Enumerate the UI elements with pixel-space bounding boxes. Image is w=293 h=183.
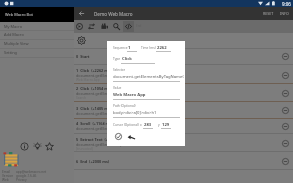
button[interactable]: Info xyxy=(20,142,29,151)
button[interactable]: Back xyxy=(76,8,87,19)
button[interactable]: Remove step xyxy=(281,122,290,131)
button[interactable]: Code xyxy=(123,21,134,32)
staticText: 129 xyxy=(162,122,170,128)
staticText: Selector xyxy=(113,68,126,72)
staticText: body>div>a[0]>div>h1 xyxy=(113,110,157,116)
staticText: y xyxy=(158,123,160,127)
button[interactable]: Play xyxy=(73,20,85,33)
staticText: 9:06 xyxy=(282,1,291,7)
staticText: Demo Web Macro xyxy=(94,11,133,17)
staticText: document.getElementsByTagName( xyxy=(76,91,141,96)
staticText: Value xyxy=(113,86,122,90)
button[interactable]: Rate app xyxy=(45,142,54,151)
button[interactable]: Remove step xyxy=(281,139,290,148)
button[interactable]: Record video xyxy=(98,20,110,33)
button[interactable]: RESET xyxy=(260,8,277,19)
button[interactable]: 2 Click (+1054 ms) xyxy=(74,84,293,102)
button[interactable]: Remove step xyxy=(281,106,290,115)
staticText: app@webmacro.net xyxy=(16,170,47,174)
button[interactable]: My Macro xyxy=(0,22,74,31)
staticText: 1 Click (+2262 ms) xyxy=(76,68,112,73)
button[interactable]: Undo xyxy=(125,131,136,142)
button[interactable]: Search xyxy=(110,20,122,33)
button[interactable]: Repeat xyxy=(85,20,97,33)
staticText: document.getElementsByTagName( xyxy=(76,126,141,131)
button[interactable]: Settings xyxy=(76,35,87,46)
button[interactable]: Add Macro xyxy=(0,30,74,39)
staticText: document.getElementsByTagName( xyxy=(76,73,141,78)
staticText: Web Macro Bot xyxy=(5,12,33,17)
staticText: document.getElementsByClassNa xyxy=(76,111,137,116)
button[interactable]: INFO xyxy=(277,8,293,19)
button[interactable]: Remove step xyxy=(281,71,290,80)
staticText: Cursor (Optional) xyxy=(113,123,139,127)
staticText: [truncated] xyxy=(76,147,93,151)
staticText: Time (ms) xyxy=(141,46,156,50)
staticText: 6 End (+2000 ms) xyxy=(76,159,110,164)
staticText: Click xyxy=(122,56,132,62)
staticText: Path (Optional) xyxy=(113,104,136,108)
button[interactable]: Setting xyxy=(0,48,74,57)
button[interactable]: 6 End (+2000 ms) xyxy=(74,152,293,170)
button[interactable]: 4 Scroll (+1164 ms) xyxy=(74,118,293,134)
staticText: Search xyxy=(76,96,87,100)
button[interactable]: 3 Click (+1405 ms) xyxy=(74,102,293,119)
button[interactable]: Remove step xyxy=(281,89,290,98)
button[interactable]: 5 Extract Text (+2906 ms) xyxy=(74,135,293,152)
staticText: 283 xyxy=(144,122,152,128)
staticText: x xyxy=(140,123,142,127)
staticText: Privacy xyxy=(16,178,27,182)
button[interactable]: Tips xyxy=(33,142,42,151)
staticText: 5 Extract Text (+2906 ms) xyxy=(76,137,125,142)
button[interactable]: 1 Click (+2262 ms) xyxy=(74,66,293,84)
staticText: 2262 xyxy=(157,45,167,51)
staticText: Type xyxy=(113,57,121,61)
button[interactable]: Multiple View xyxy=(0,39,74,48)
staticText: 2 Click (+1054 ms) xyxy=(76,86,112,91)
staticText: Sequence xyxy=(113,46,128,50)
button[interactable]: Confirm xyxy=(113,131,124,142)
staticText: 1 xyxy=(128,45,131,51)
staticText: google-1.6.46 xyxy=(16,174,37,178)
staticText: document.getElementsByClassNa xyxy=(76,142,137,147)
button[interactable]: 0 Start xyxy=(74,48,293,65)
staticText: Web Macro App xyxy=(113,92,146,98)
staticText: Web xyxy=(2,178,9,182)
button[interactable]: Remove step xyxy=(281,157,290,166)
button[interactable]: Remove step xyxy=(281,52,290,61)
staticText: Email xyxy=(2,170,11,174)
staticText: Add Macro xyxy=(4,32,24,37)
staticText: Web Macro App xyxy=(76,78,100,82)
staticText: Multiple View xyxy=(4,41,29,46)
staticText: My Macro xyxy=(4,24,22,29)
staticText: document.getElementsByTagName( xyxy=(113,74,184,80)
staticText: 3 Click (+1405 ms) xyxy=(76,106,112,111)
staticText: Setting xyxy=(4,50,17,55)
staticText: 0 Start xyxy=(76,54,90,59)
staticText: 4 Scroll (+1164 ms) xyxy=(76,121,113,126)
staticText: Version xyxy=(2,174,14,178)
